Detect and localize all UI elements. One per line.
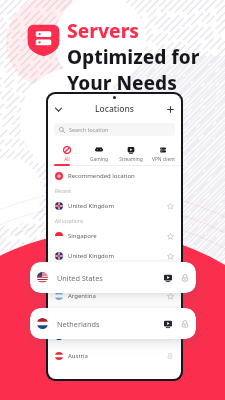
staticText: United Kingdom: [68, 202, 167, 210]
other: Locked: [180, 273, 190, 283]
staticText: Austria: [68, 352, 166, 360]
staticText: Search location: [69, 126, 109, 133]
other: Streaming: [164, 274, 172, 282]
staticText: Gaming: [90, 156, 108, 163]
button[interactable]: VPN client: [147, 145, 179, 164]
staticText: Optimized for: [67, 44, 200, 70]
button[interactable]: Netherlands: [30, 308, 196, 339]
staticText: All: [64, 156, 70, 163]
button[interactable]: All: [50, 145, 83, 164]
button[interactable]: Armenia: [48, 306, 181, 326]
other: Streaming: [164, 320, 172, 328]
staticText: Recommended location: [68, 172, 174, 180]
staticText: All locations: [55, 218, 84, 225]
button[interactable]: United States: [48, 266, 181, 286]
button[interactable]: Gaming: [83, 145, 115, 164]
staticText: United States: [68, 272, 167, 280]
button[interactable]: Add location: [165, 104, 176, 115]
button[interactable]: Search location: [54, 123, 175, 136]
staticText: Singapore: [68, 232, 167, 240]
button[interactable]: Streaming: [115, 145, 147, 164]
staticText: VPN client: [152, 156, 175, 163]
staticText: Netherlands: [57, 319, 164, 329]
staticText: Recent: [55, 188, 72, 195]
staticText: United Kingdom: [68, 252, 167, 260]
staticText: Locations: [64, 103, 165, 115]
other: Locked: [180, 319, 190, 329]
staticText: Your Needs: [67, 70, 177, 96]
staticText: Australia: [68, 332, 167, 340]
button[interactable]: Recommended location: [48, 166, 181, 186]
button[interactable]: Singapore: [48, 226, 181, 246]
button[interactable]: Collapse: [53, 104, 64, 115]
button[interactable]: Austria: [48, 346, 181, 366]
button[interactable]: United Kingdom: [48, 246, 181, 266]
button[interactable]: United Kingdom: [48, 196, 181, 216]
staticText: United States: [57, 273, 164, 283]
staticText: Streaming: [119, 156, 143, 163]
button[interactable]: Australia: [48, 326, 181, 346]
staticText: Servers: [67, 18, 139, 44]
button[interactable]: United States: [30, 262, 196, 293]
staticText: Argentina: [68, 292, 167, 300]
button[interactable]: Argentina: [48, 286, 181, 306]
